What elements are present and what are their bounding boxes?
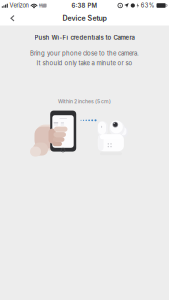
staticText: 6:38 PM [71,2,97,9]
staticText: Within 2 inches (5 cm) [58,98,111,105]
staticText: Bring your phone close to the camera. [30,50,139,57]
button[interactable]: Back [0,11,25,25]
staticText: VPN [39,1,46,10]
staticText: 63% [141,2,155,9]
staticText: It should only take a minute or so [36,59,132,67]
staticText: Verizon [9,2,28,9]
staticText: Push Wi-Fi credentials to Camera [34,34,134,41]
staticText: Device Setup [62,14,106,22]
